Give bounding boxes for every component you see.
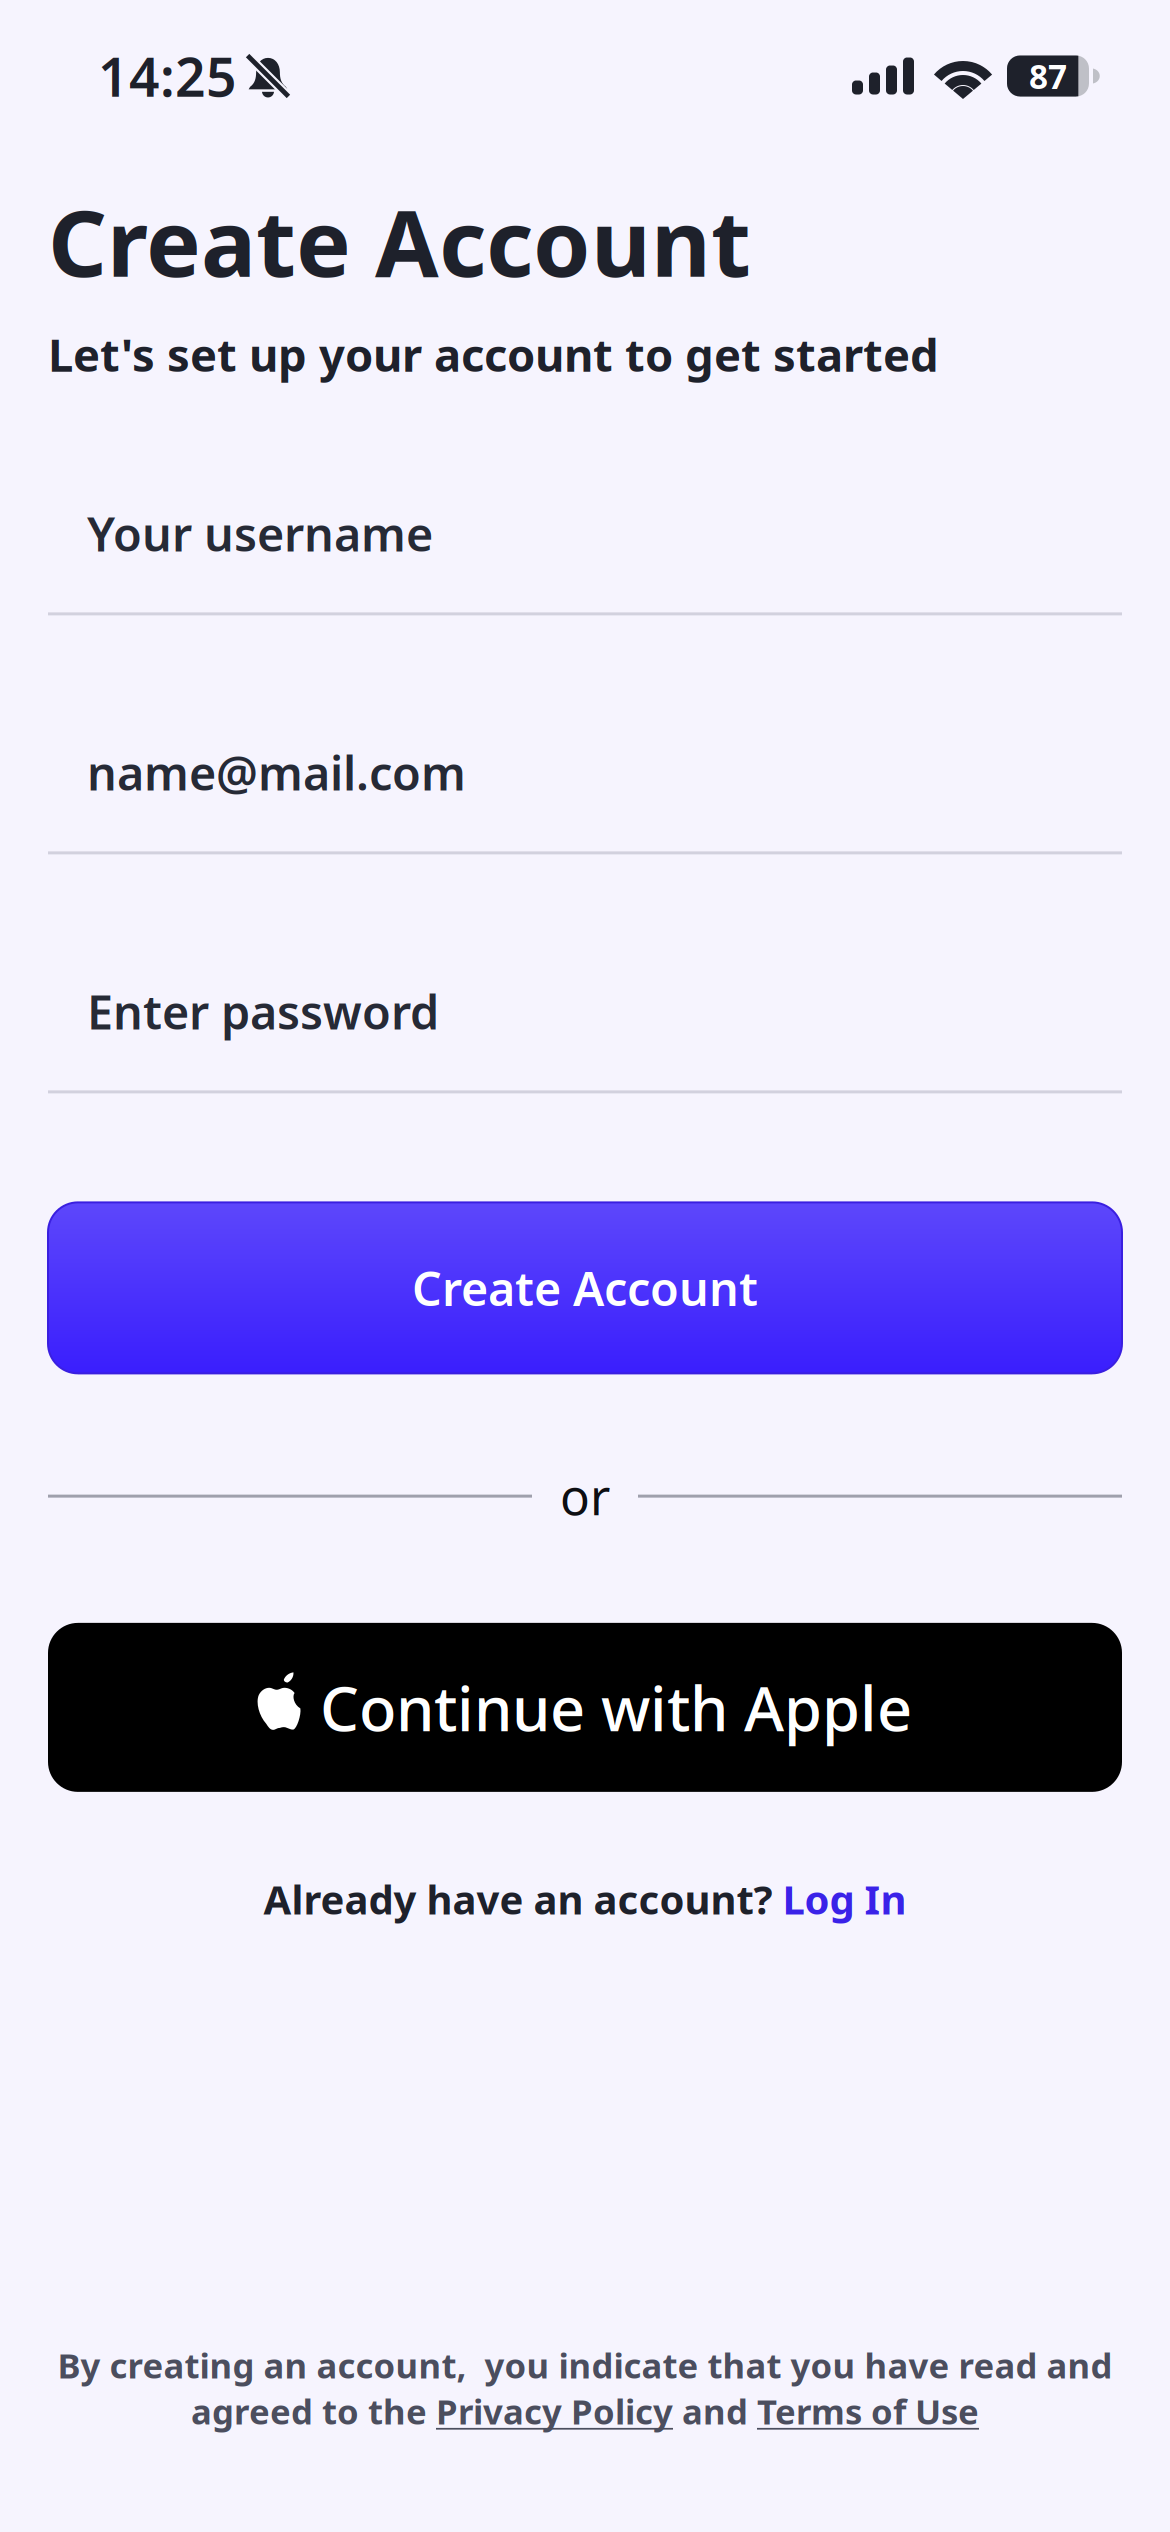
button[interactable]: Create Account [48,1202,1122,1373]
staticText: Already have an account? [263,1872,782,1925]
staticText: name@mail.com [87,741,466,803]
button[interactable]: Already have an account? [48,1869,1122,1929]
button[interactable]: name@mail.com [48,615,1122,854]
button[interactable]: Enter password [48,854,1122,1093]
staticText: Create Account [412,1257,758,1319]
button[interactable]: Privacy Policy [436,2388,673,2434]
staticText: Create Account [48,180,751,302]
staticText: Log In [782,1872,906,1925]
staticText: 14:25 [98,41,237,111]
staticText: Terms of Use [757,2388,979,2434]
staticText: or [560,1463,610,1529]
staticText: Your username [87,502,433,564]
staticText: By creating an account, you indicate tha… [57,2342,1112,2388]
staticText: Continue with Apple [320,1667,912,1748]
staticText: Let's set up your account to get started [48,324,939,384]
staticText: Enter password [87,980,439,1042]
staticText: Privacy Policy [436,2388,673,2434]
staticText: and [673,2388,757,2434]
button[interactable]: Continue with Apple [48,1623,1122,1792]
button[interactable]: Your username [48,376,1122,615]
staticText: agreed to the [191,2388,436,2434]
button[interactable]: Terms of Use [757,2388,979,2434]
staticText: 87 [1029,54,1067,98]
